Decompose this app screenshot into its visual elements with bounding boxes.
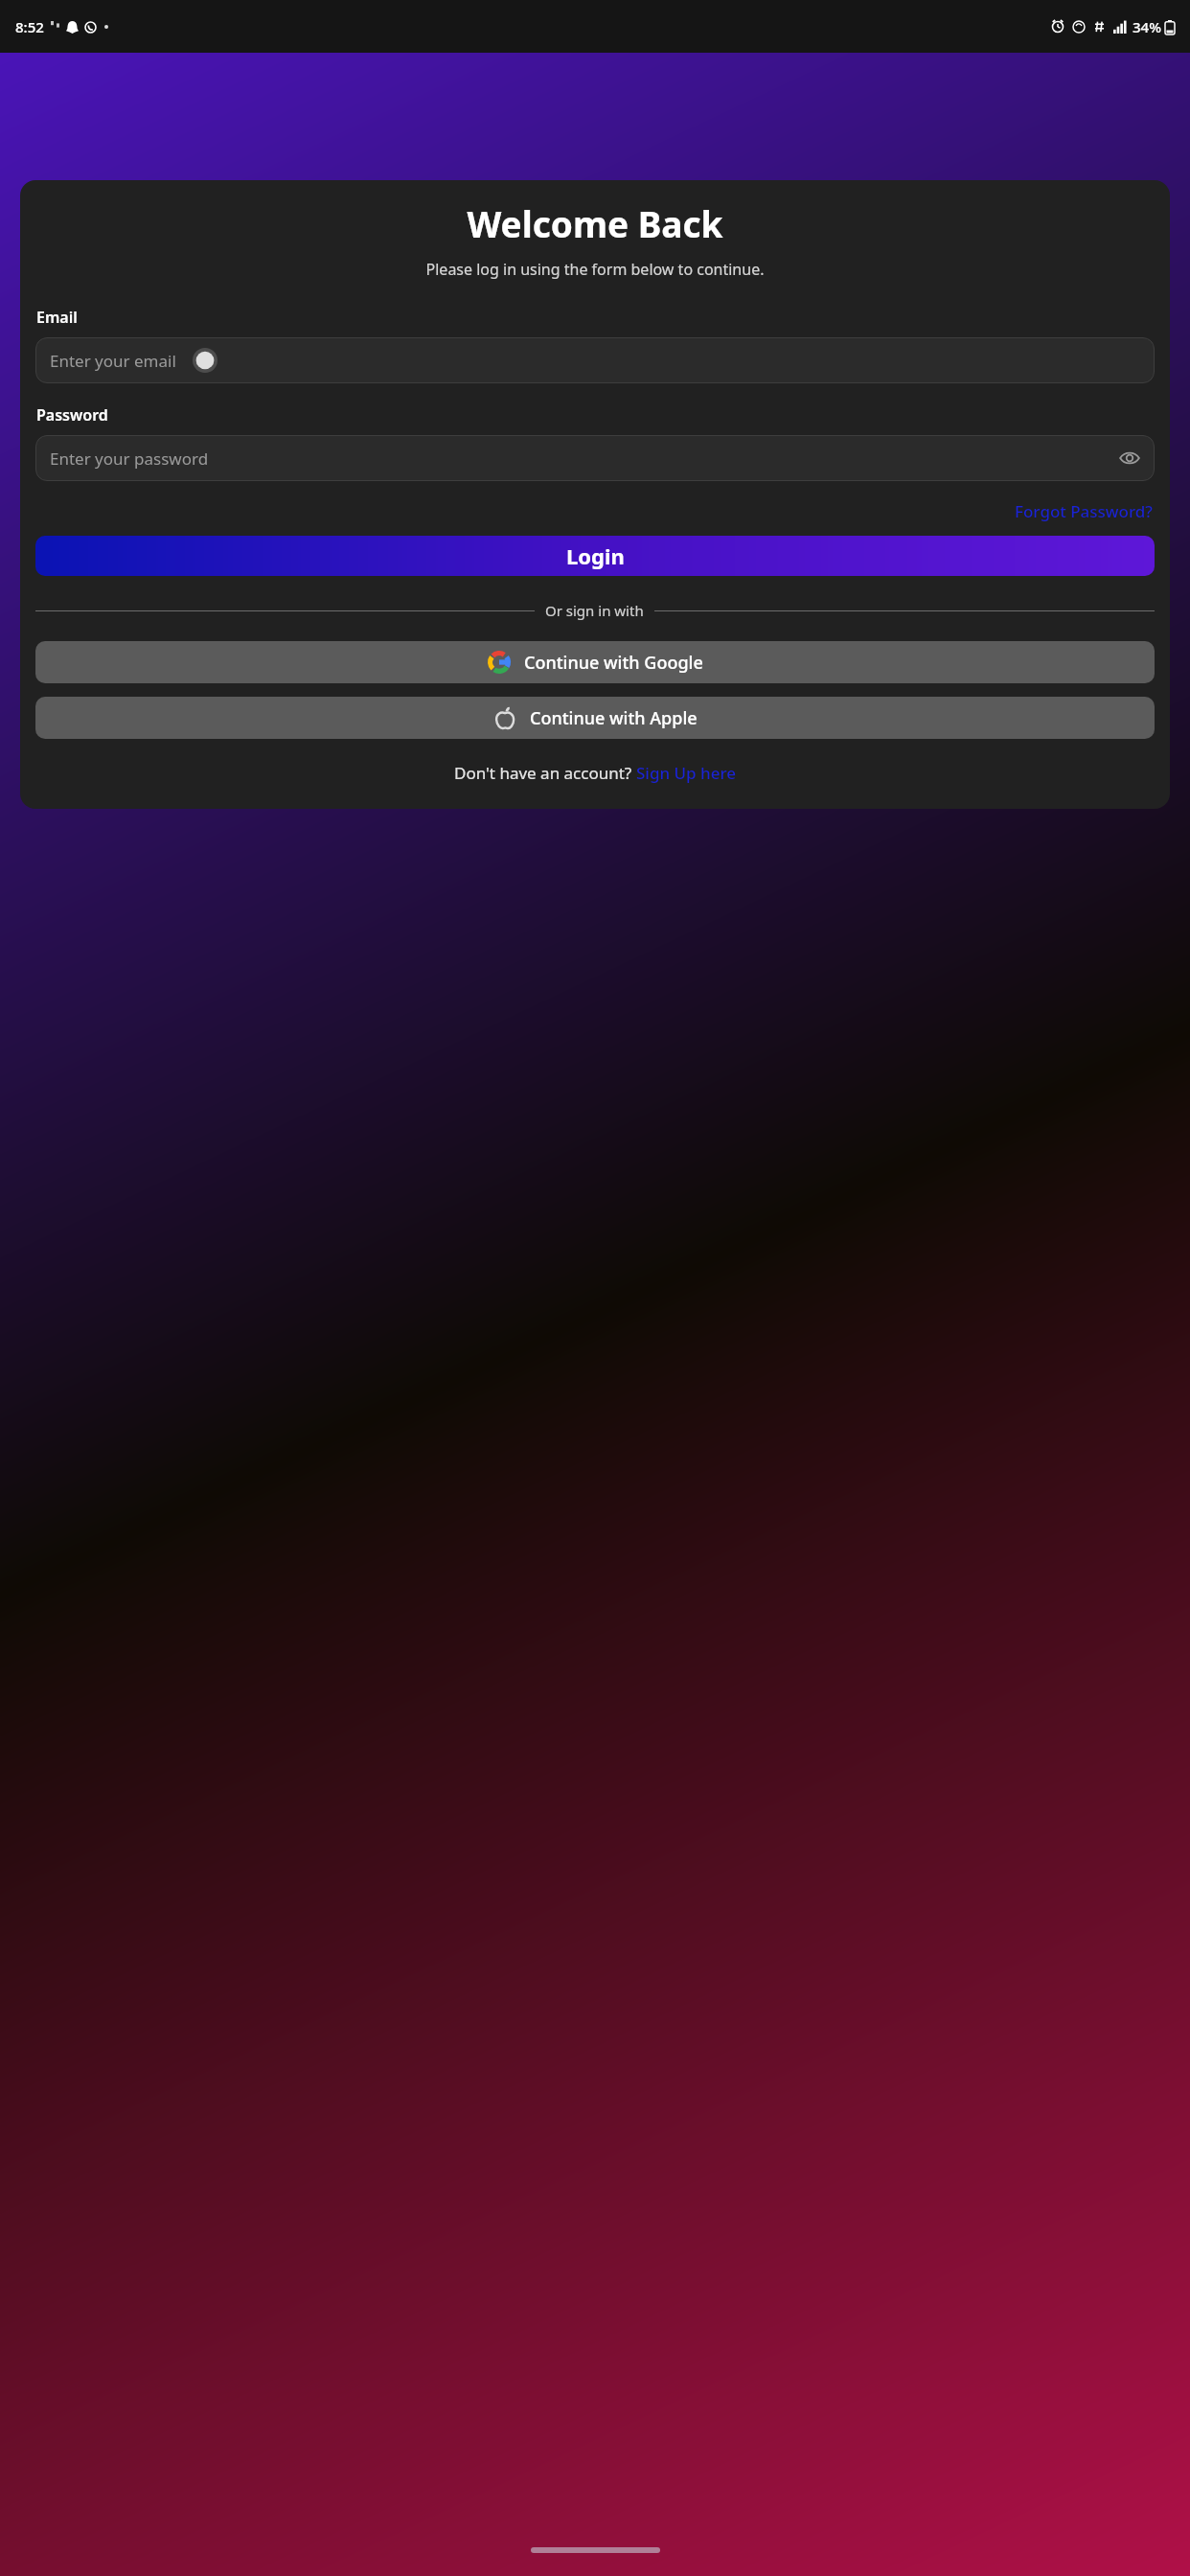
staticText: Login xyxy=(566,541,625,570)
staticText: Don't have an account? xyxy=(454,762,636,784)
button[interactable]: Forgot Password? xyxy=(1013,498,1155,524)
button[interactable]: Continue with Google xyxy=(35,641,1155,683)
staticText: Forgot Password? xyxy=(1015,500,1153,522)
staticText: Please log in using the form below to co… xyxy=(35,259,1155,280)
staticText: Password xyxy=(36,404,108,425)
staticText: Enter your email xyxy=(50,350,176,372)
staticText: Enter your password xyxy=(50,448,209,470)
button[interactable]: Enter your password xyxy=(35,435,1155,481)
staticText: 8:52 xyxy=(15,17,44,36)
staticText: Continue with Apple xyxy=(530,706,698,730)
button[interactable]: Continue with Apple xyxy=(35,697,1155,739)
button[interactable]: Enter your email xyxy=(35,337,1155,383)
button[interactable]: Login xyxy=(35,536,1155,576)
button[interactable]: Sign Up here xyxy=(636,762,737,784)
staticText: Welcome Back xyxy=(35,199,1155,247)
staticText: Or sign in with xyxy=(545,601,644,620)
staticText: Sign Up here xyxy=(636,762,737,784)
staticText: Email xyxy=(36,307,78,328)
staticText: 34% xyxy=(1133,17,1161,36)
staticText: Continue with Google xyxy=(524,651,703,675)
button[interactable]: Show password xyxy=(1116,445,1143,471)
